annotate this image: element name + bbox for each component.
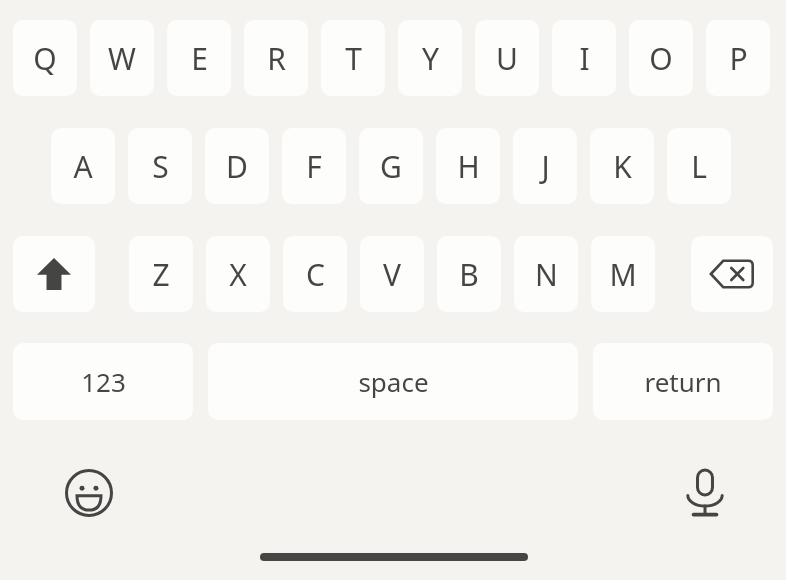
staticText: Z [152,254,170,295]
staticText: M [609,254,637,295]
staticText: N [535,254,558,295]
staticText: 123 [81,364,126,399]
button[interactable]: G [359,128,423,204]
button[interactable]: Backspace [691,236,773,312]
button[interactable]: return [593,343,773,420]
button[interactable]: Emoji keyboard [58,462,120,524]
button[interactable]: D [205,128,269,204]
button[interactable]: J [513,128,577,204]
staticText: S [152,146,169,187]
staticText: D [226,146,248,187]
button[interactable]: R [244,20,308,96]
button[interactable]: P [706,20,770,96]
button[interactable]: V [360,236,424,312]
staticText: I [579,38,590,79]
staticText: X [229,254,247,295]
staticText: U [496,38,518,79]
button[interactable]: Z [129,236,193,312]
button[interactable]: X [206,236,270,312]
staticText: F [306,146,322,187]
staticText: J [541,146,550,187]
staticText: E [191,38,208,79]
staticText: R [267,38,286,79]
button[interactable]: E [167,20,231,96]
staticText: O [649,38,673,79]
button[interactable]: space [208,343,578,420]
button[interactable]: Y [398,20,462,96]
button[interactable]: M [591,236,655,312]
button[interactable]: Voice input [674,462,736,524]
button[interactable]: N [514,236,578,312]
staticText: G [380,146,402,187]
button[interactable]: L [667,128,731,204]
staticText: Q [33,38,57,79]
staticText: B [459,254,479,295]
button[interactable]: T [321,20,385,96]
staticText: V [383,254,401,295]
button[interactable]: H [436,128,500,204]
button[interactable]: F [282,128,346,204]
button[interactable]: C [283,236,347,312]
staticText: T [345,38,362,79]
button[interactable]: W [90,20,154,96]
staticText: Y [422,38,439,79]
button[interactable]: Shift [13,236,95,312]
staticText: return [644,364,722,399]
staticText: K [613,146,632,187]
button[interactable]: B [437,236,501,312]
staticText: H [457,146,480,187]
button[interactable]: S [128,128,192,204]
staticText: C [306,254,325,295]
button[interactable]: K [590,128,654,204]
button[interactable]: I [552,20,616,96]
staticText: L [691,146,707,187]
staticText: P [729,38,748,79]
staticText: A [73,146,93,187]
button[interactable]: U [475,20,539,96]
button[interactable]: 123 [13,343,193,420]
staticText: space [358,364,429,399]
button[interactable]: A [51,128,115,204]
staticText: W [108,38,136,79]
button[interactable]: Q [13,20,77,96]
button[interactable]: O [629,20,693,96]
